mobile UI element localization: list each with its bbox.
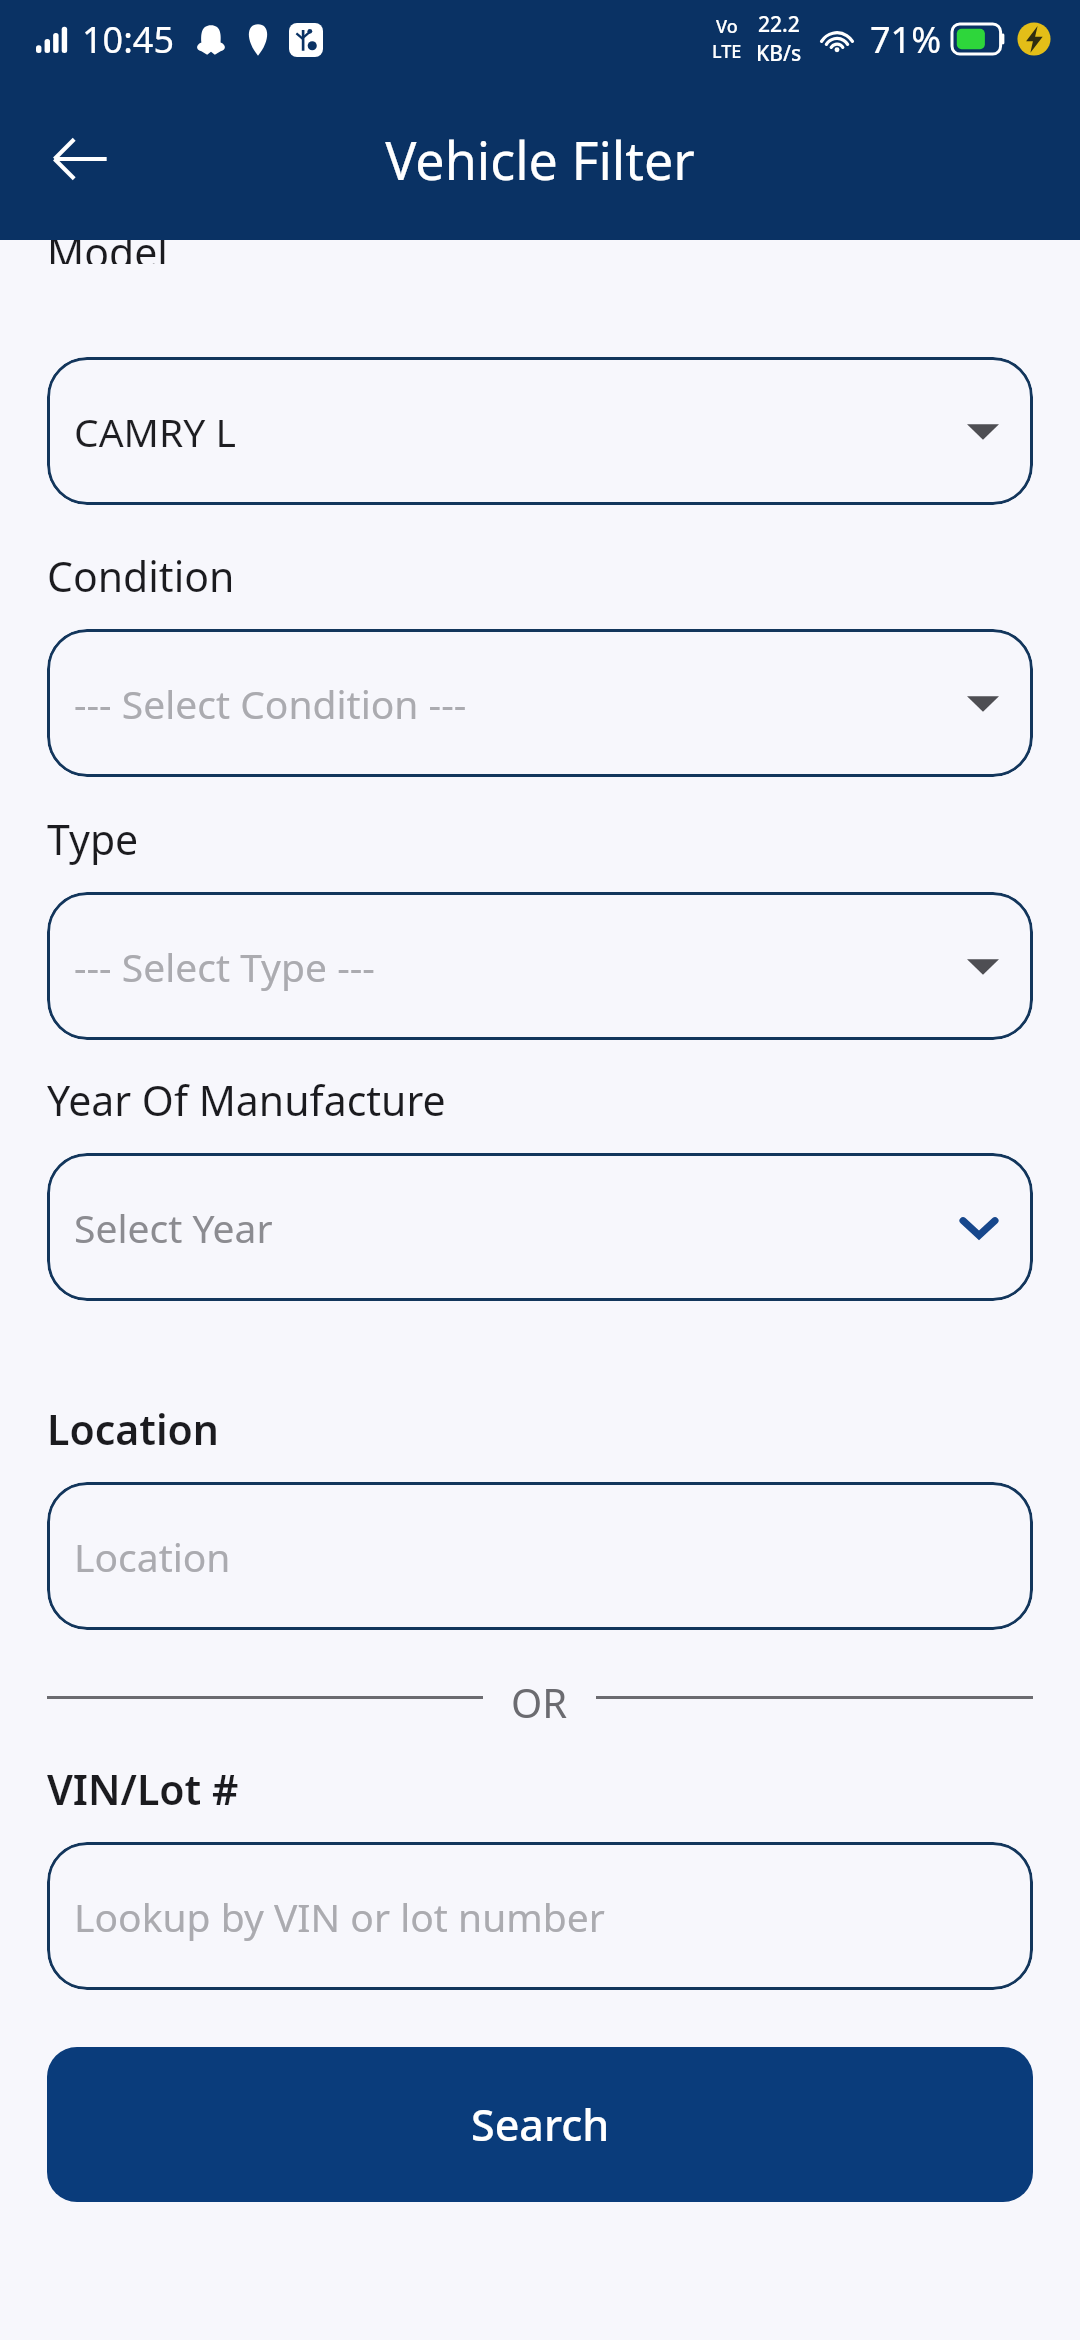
button[interactable]: Lookup by VIN or lot number [47,1842,1033,1990]
button[interactable]: Back [20,99,140,219]
button[interactable]: --- Select Type --- [47,892,1033,1040]
staticText: Search [471,2095,610,2154]
staticText: Lookup by VIN or lot number [74,1890,605,1943]
staticText: 22.2 [758,10,800,39]
button[interactable]: Search [47,2047,1033,2202]
button[interactable]: Select Year [47,1153,1033,1301]
staticText: Model [47,240,168,264]
staticText: OR [511,1675,568,1719]
staticText: 10:45 [82,15,175,64]
staticText: LTE [712,39,742,64]
staticText: Vo [716,14,738,39]
button[interactable]: Location [47,1482,1033,1630]
staticText: Vehicle Filter [0,124,1080,195]
staticText: VIN/Lot # [47,1761,239,1817]
staticText: Year Of Manufacture [47,1072,446,1128]
button[interactable]: CAMRY L [47,357,1033,505]
staticText: --- Select Condition --- [74,677,467,730]
staticText: Location [74,1530,231,1583]
staticText: Condition [47,548,235,604]
button[interactable]: --- Select Condition --- [47,629,1033,777]
staticText: Type [47,811,139,867]
staticText: 71% [870,15,942,64]
staticText: CAMRY L [74,405,236,458]
staticText: KB/s [756,39,802,68]
staticText: Select Year [74,1201,273,1254]
staticText: --- Select Type --- [74,940,375,993]
staticText: Location [47,1401,219,1457]
